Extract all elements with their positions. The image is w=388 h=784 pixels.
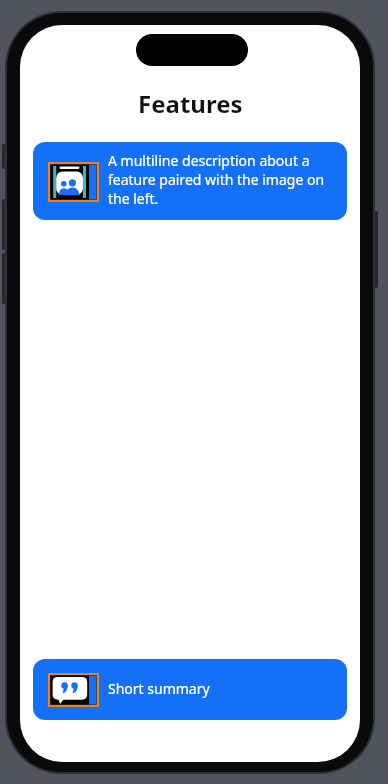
staticText: Features	[138, 87, 243, 120]
staticText: Short summary	[108, 679, 210, 698]
button[interactable]: Short summary	[33, 659, 347, 720]
staticText: A multiline description about a feature …	[108, 151, 325, 208]
button[interactable]: A multiline description about a feature …	[33, 142, 347, 220]
